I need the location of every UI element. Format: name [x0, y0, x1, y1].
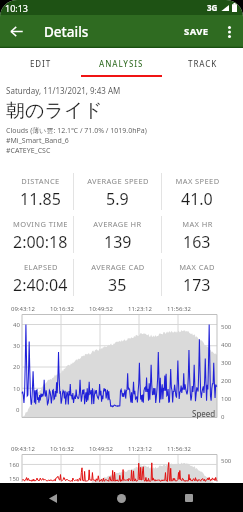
staticText: 100 — [221, 395, 232, 403]
staticText: Saturday, 11/13/2021, 9:43 AM — [6, 85, 121, 96]
button[interactable]: AVERAGE CAD — [74, 256, 161, 299]
button[interactable]: More options — [215, 18, 243, 46]
staticText: 30 — [13, 342, 20, 350]
staticText: 朝のライド — [6, 99, 103, 123]
staticText: MAX CAD — [179, 262, 215, 272]
staticText: #CATEYE_CSC — [6, 146, 51, 156]
staticText: #Mi_Smart_Band_6 — [6, 136, 69, 146]
button[interactable]: Back — [39, 484, 67, 512]
staticText: 200 — [221, 377, 232, 385]
staticText: 11:23:12 — [128, 305, 152, 313]
button[interactable]: AVERAGE SPEED — [74, 170, 161, 213]
staticText: MAX HR — [182, 219, 213, 229]
button[interactable]: EDIT — [0, 48, 81, 77]
staticText: 20 — [13, 363, 20, 371]
staticText: Clouds (薄い雲: 12.1℃ / 71.0% / 1019.0hPa) — [6, 126, 147, 136]
staticText: TRACK — [188, 58, 218, 69]
staticText: 400 — [221, 341, 232, 349]
staticText: AVERAGE HR — [93, 219, 142, 229]
staticText: 500 — [221, 323, 232, 331]
staticText: ANALYSIS — [99, 58, 144, 69]
staticText: 11:56:32 — [167, 305, 191, 313]
staticText: 11:56:32 — [167, 445, 191, 453]
staticText: 10:13 — [5, 2, 29, 14]
button[interactable]: AVERAGE HR — [74, 213, 161, 256]
button[interactable]: ANALYSIS — [81, 48, 162, 77]
button[interactable]: MAX CAD — [162, 256, 232, 299]
staticText: 11:23:12 — [128, 445, 152, 453]
staticText: AVERAGE SPEED — [87, 176, 149, 186]
staticText: 2:00:18 — [13, 231, 68, 253]
staticText: 35 — [108, 274, 127, 296]
staticText: 11.85 — [20, 188, 61, 210]
staticText: EDIT — [30, 58, 52, 69]
staticText: 160 — [9, 461, 20, 469]
staticText: 10:16:32 — [50, 305, 74, 313]
button[interactable]: SAVE — [178, 17, 215, 46]
staticText: 40 — [13, 321, 20, 329]
staticText: 150 — [9, 475, 20, 483]
staticText: DISTANCE — [21, 176, 60, 186]
button[interactable]: Home — [107, 484, 135, 512]
staticText: AVERAGE CAD — [91, 262, 145, 272]
staticText: 09:43:12 — [11, 305, 35, 313]
staticText: ELAPSED — [24, 262, 58, 272]
button[interactable]: TRACK — [162, 48, 243, 77]
staticText: 0 — [221, 413, 225, 421]
staticText: 09:43:12 — [11, 445, 35, 453]
button[interactable]: DISTANCE — [8, 170, 73, 213]
button[interactable]: ELAPSED — [8, 256, 73, 299]
button[interactable]: MAX HR — [162, 213, 232, 256]
staticText: 3G — [207, 2, 218, 13]
staticText: 0 — [16, 406, 20, 414]
staticText: 10:16:32 — [50, 445, 74, 453]
button[interactable]: Recent apps — [175, 484, 203, 512]
staticText: MAX SPEED — [175, 176, 220, 186]
staticText: 163 — [183, 231, 211, 253]
staticText: Speed — [192, 408, 216, 419]
staticText: Details — [44, 23, 89, 41]
button[interactable]: Back — [0, 15, 33, 48]
staticText: SAVE — [184, 25, 209, 38]
staticText: 300 — [221, 359, 232, 367]
staticText: 10 — [13, 385, 20, 393]
staticText: 500 — [221, 457, 232, 465]
staticText: 10:49:52 — [89, 305, 113, 313]
button[interactable]: MAX SPEED — [162, 170, 232, 213]
staticText: 173 — [183, 274, 211, 296]
button[interactable]: MOVING TIME — [8, 213, 73, 256]
staticText: 2:40:04 — [13, 274, 68, 296]
staticText: MOVING TIME — [13, 219, 68, 229]
staticText: 41.0 — [181, 188, 213, 210]
staticText: 139 — [104, 231, 132, 253]
staticText: 5.9 — [106, 188, 129, 210]
staticText: 10:49:52 — [89, 445, 113, 453]
